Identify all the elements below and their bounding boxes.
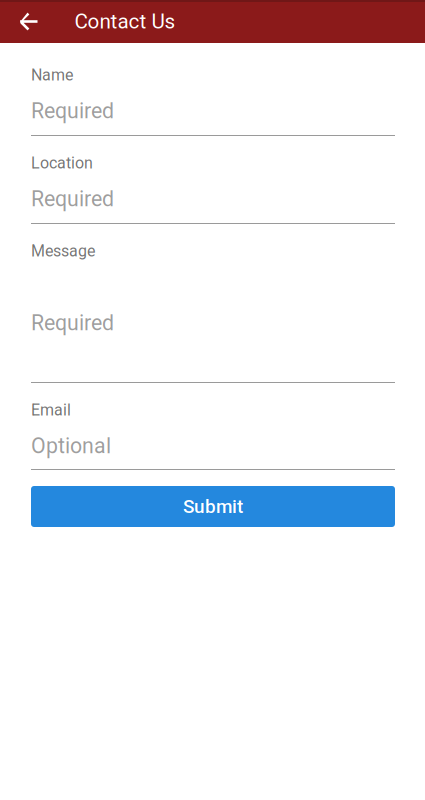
button[interactable]: Required	[31, 311, 395, 383]
button[interactable]: Optional	[31, 434, 395, 470]
staticText: Required	[31, 186, 114, 211]
button[interactable]: Back	[0, 0, 57, 43]
staticText: Contact Us	[74, 9, 175, 34]
staticText: Message	[31, 242, 95, 260]
button[interactable]: Submit	[31, 486, 395, 527]
button[interactable]: Required	[31, 187, 395, 224]
staticText: Submit	[183, 495, 243, 518]
staticText: Email	[31, 401, 71, 419]
button[interactable]: Required	[31, 99, 395, 136]
staticText: Location	[31, 154, 93, 172]
staticText: Required	[31, 98, 114, 123]
staticText: Required	[31, 310, 114, 335]
staticText: Optional	[31, 433, 111, 458]
staticText: Name	[31, 66, 73, 84]
